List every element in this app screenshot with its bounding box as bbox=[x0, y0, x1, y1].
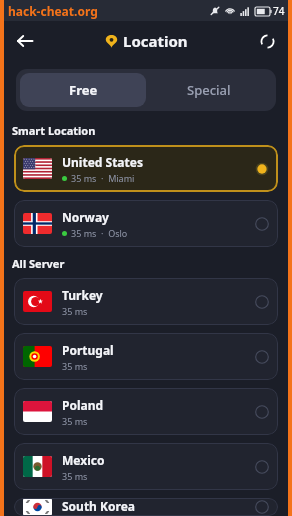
staticText: United States bbox=[62, 154, 143, 170]
staticText: 35 ms · Oslo bbox=[71, 227, 128, 239]
staticText: hack-cheat.org bbox=[8, 3, 98, 19]
button[interactable]: Norway bbox=[14, 200, 278, 247]
button[interactable]: Special bbox=[146, 73, 272, 107]
staticText: 35 ms bbox=[62, 415, 88, 427]
staticText: Mexico bbox=[62, 452, 105, 468]
staticText: Turkey bbox=[62, 287, 103, 303]
staticText: 35 ms · Miami bbox=[71, 172, 135, 184]
staticText: Free bbox=[69, 81, 98, 99]
staticText: Smart Location bbox=[12, 123, 96, 138]
staticText: 74 bbox=[273, 4, 285, 18]
staticText: Special bbox=[187, 81, 231, 99]
button[interactable]: Poland bbox=[14, 388, 278, 435]
staticText: All Server bbox=[12, 256, 65, 271]
staticText: Poland bbox=[62, 397, 104, 413]
button[interactable]: United States bbox=[14, 145, 278, 192]
staticText: Location bbox=[123, 31, 188, 51]
staticText: 35 ms bbox=[62, 360, 88, 372]
button[interactable]: Turkey bbox=[14, 278, 278, 325]
staticText: Norway bbox=[62, 209, 109, 225]
staticText: 35 ms bbox=[62, 470, 88, 482]
button[interactable]: Portugal bbox=[14, 333, 278, 380]
staticText: South Korea bbox=[62, 498, 135, 514]
staticText: 35 ms bbox=[62, 305, 88, 317]
button[interactable]: Back bbox=[11, 27, 39, 55]
button[interactable]: South Korea bbox=[14, 498, 278, 516]
button[interactable]: Mexico bbox=[14, 443, 278, 490]
button[interactable]: Free bbox=[20, 73, 146, 107]
staticText: Portugal bbox=[62, 342, 114, 358]
button[interactable]: Refresh bbox=[253, 27, 281, 55]
